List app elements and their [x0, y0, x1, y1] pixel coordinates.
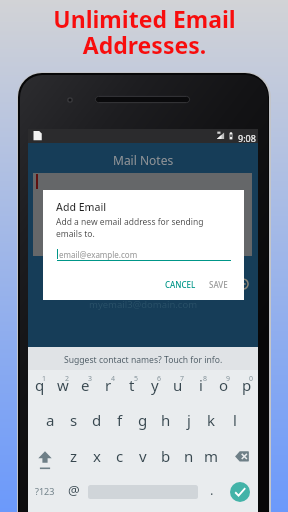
button[interactable]: Backspace [223, 441, 257, 477]
staticText: w [57, 375, 69, 395]
staticText: v [139, 446, 147, 466]
button[interactable]: l [223, 405, 246, 441]
staticText: Unlimited Email Addresses. [53, 3, 236, 61]
button[interactable]: 1 [28, 370, 51, 406]
button[interactable]: 4 [97, 370, 120, 406]
staticText: 6 [157, 374, 162, 384]
button[interactable]: 3 [74, 370, 97, 406]
button[interactable]: f [108, 405, 131, 441]
button[interactable]: Enter [223, 476, 257, 512]
staticText: x [93, 446, 101, 466]
staticText: n [184, 446, 194, 466]
button[interactable]: @ [62, 476, 85, 512]
button[interactable]: 6 [143, 370, 166, 406]
staticText: y [151, 375, 159, 395]
staticText: o [219, 375, 229, 395]
staticText: ?123 [35, 485, 55, 497]
staticText: a [46, 410, 55, 430]
staticText: l [233, 410, 237, 430]
staticText: p [242, 375, 252, 395]
button[interactable]: n [177, 441, 200, 477]
staticText: myemail3@domain.com [89, 298, 198, 311]
button[interactable]: 8 [189, 370, 212, 406]
staticText: 4 [111, 374, 116, 384]
staticText: u [173, 375, 183, 395]
staticText: 9 [226, 374, 231, 384]
staticText: d [92, 410, 102, 430]
button[interactable]: 2 [51, 370, 74, 406]
staticText: e [81, 375, 90, 395]
button[interactable]: Space [85, 476, 200, 512]
button[interactable]: z [62, 441, 85, 477]
button[interactable]: 9 [212, 370, 235, 406]
staticText: 0 [249, 374, 254, 384]
button[interactable]: h [154, 405, 177, 441]
staticText: CANCEL [165, 279, 196, 290]
staticText: q [35, 375, 45, 395]
staticText: Add a new email address for sending emai… [56, 216, 204, 239]
staticText: Add Email [56, 200, 107, 214]
button[interactable]: g [131, 405, 154, 441]
staticText: k [207, 410, 216, 430]
button[interactable]: ?123 [28, 476, 62, 512]
other: Add email [237, 278, 249, 290]
staticText: 3 [88, 374, 93, 384]
button[interactable]: k [200, 405, 223, 441]
staticText: r [105, 375, 112, 395]
staticText: f [117, 410, 123, 430]
staticText: j [187, 410, 191, 430]
button[interactable]: CANCEL [160, 276, 201, 293]
button[interactable]: Shift [28, 441, 62, 477]
button[interactable]: 5 [120, 370, 143, 406]
staticText: 2 [65, 374, 70, 384]
button[interactable]: v [131, 441, 154, 477]
staticText: t [129, 375, 135, 395]
staticText: h [161, 410, 171, 430]
staticText: m [204, 446, 219, 466]
staticText: . [210, 481, 214, 499]
button[interactable]: 0 [235, 370, 258, 406]
staticText: s [70, 410, 78, 430]
staticText: g [138, 410, 148, 430]
staticText: email@example.com [59, 249, 138, 260]
button[interactable]: 7 [166, 370, 189, 406]
staticText: Mail Notes [113, 152, 174, 168]
button[interactable]: Suggest contact names? Touch for info. [28, 347, 258, 370]
button[interactable]: d [85, 405, 108, 441]
button[interactable]: a [39, 405, 62, 441]
staticText: 8 [203, 374, 208, 384]
button[interactable]: m [200, 441, 223, 477]
staticText: SAVE [209, 279, 228, 290]
staticText: z [70, 446, 78, 466]
staticText: b [161, 446, 171, 466]
button[interactable]: . [200, 476, 223, 512]
staticText: c [116, 446, 124, 466]
staticText: 7 [180, 374, 185, 384]
button[interactable]: j [177, 405, 200, 441]
staticText: 9:08 [238, 132, 256, 144]
staticText: 1 [42, 374, 47, 384]
staticText: 5 [134, 374, 139, 384]
staticText: i [199, 375, 203, 395]
button[interactable]: s [62, 405, 85, 441]
staticText: @ [68, 481, 80, 499]
button[interactable]: b [154, 441, 177, 477]
staticText: Suggest contact names? Touch for info. [64, 354, 223, 366]
button[interactable]: x [85, 441, 108, 477]
button[interactable]: SAVE [204, 276, 233, 293]
button[interactable]: c [108, 441, 131, 477]
